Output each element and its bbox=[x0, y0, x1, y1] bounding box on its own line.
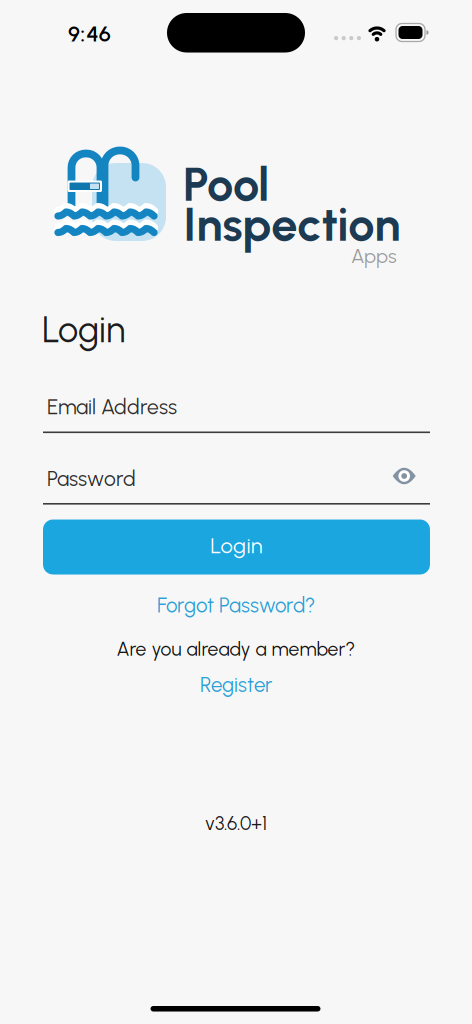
staticText: Apps bbox=[351, 244, 397, 268]
staticText: Inspection bbox=[183, 196, 400, 252]
staticText: Login bbox=[210, 532, 263, 559]
staticText: Forgot Password? bbox=[157, 593, 315, 618]
staticText: Register bbox=[200, 672, 272, 697]
staticText: Pool bbox=[183, 156, 269, 212]
button[interactable]: Login bbox=[43, 519, 430, 574]
staticText: Login bbox=[42, 308, 125, 351]
button[interactable]: Forgot Password? bbox=[0, 593, 472, 618]
button[interactable]: Register bbox=[0, 672, 472, 697]
staticText: 9:46 bbox=[68, 20, 111, 47]
button[interactable]: Password bbox=[43, 462, 430, 505]
staticText: Email Address bbox=[47, 394, 177, 419]
staticText: v3.6.0+1 bbox=[205, 812, 267, 835]
staticText: Password bbox=[47, 466, 136, 491]
staticText: Are you already a member? bbox=[116, 637, 355, 661]
button[interactable]: Email Address bbox=[43, 391, 430, 433]
